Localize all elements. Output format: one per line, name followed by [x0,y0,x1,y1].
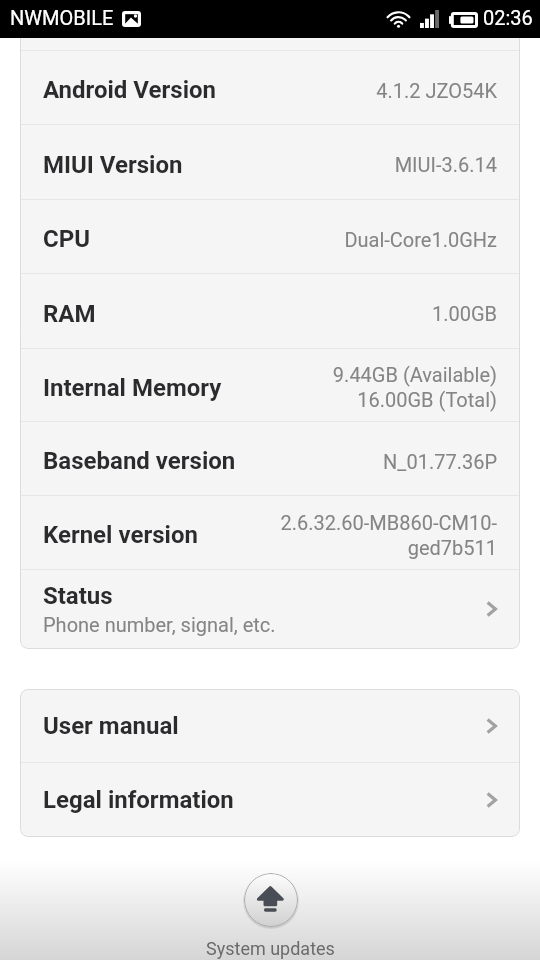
staticText: 1.00GB [431,302,497,325]
staticText: Phone number, signal, etc. [43,613,276,636]
staticText: MIUI-3.6.14 [394,153,497,176]
staticText: System updates [206,938,335,959]
button[interactable]: Internal Memory [20,349,520,421]
staticText: Status [43,582,113,610]
button[interactable]: Android Version [20,51,520,124]
staticText: MIUI Version [43,151,183,179]
button[interactable]: Status [20,570,520,648]
staticText: CPU [43,225,91,253]
staticText: Dual-Core1.0GHz [344,228,497,251]
staticText: Baseband version [43,447,236,475]
staticText: RAM [43,300,96,328]
staticText: Legal information [43,786,234,814]
staticText: 02:36 [483,6,533,29]
button[interactable]: Kernel version [20,496,520,569]
button[interactable]: CPU [20,200,520,273]
staticText: 4.1.2 JZO54K [376,79,497,102]
staticText: Android Version [43,76,217,104]
staticText: N_01.77.36P [383,450,497,473]
button[interactable]: RAM [20,274,520,348]
staticText: Kernel version [43,521,198,549]
staticText: NWMOBILE [10,6,114,29]
staticText: User manual [43,712,179,740]
staticText: 9.44GB (Available) 16.00GB (Total) [332,363,497,412]
button[interactable]: MIUI Version [20,125,520,199]
button[interactable]: Baseband version [20,422,520,495]
button[interactable]: System updates [244,873,298,927]
button[interactable]: Legal information [20,763,520,837]
staticText: 2.6.32.60-MB860-CM10- ged7b511 [280,511,497,560]
staticText: Internal Memory [43,374,222,402]
button[interactable]: User manual [20,689,520,762]
